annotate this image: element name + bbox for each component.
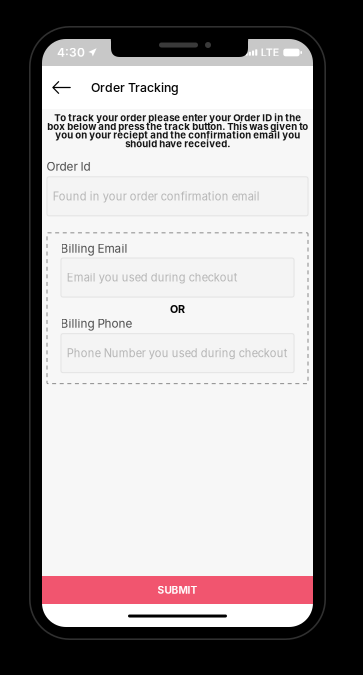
staticText: Billing Email xyxy=(60,241,127,256)
staticText: SUBMIT xyxy=(157,584,197,596)
staticText: Order Id xyxy=(46,159,90,174)
staticText: Billing Phone xyxy=(60,316,132,331)
staticText: Found in your order confirmation email xyxy=(53,190,260,203)
staticText: 4:30 xyxy=(57,45,85,60)
button[interactable]: SUBMIT xyxy=(42,576,313,604)
staticText: LTE xyxy=(261,46,279,59)
button[interactable]: Back xyxy=(47,70,76,104)
staticText: OR xyxy=(170,303,185,315)
staticText: Email you used during checkout xyxy=(67,271,238,284)
button[interactable]: Phone Number you used during checkout xyxy=(60,333,294,373)
staticText: Phone Number you used during checkout xyxy=(67,346,288,360)
button[interactable]: Email you used during checkout xyxy=(60,258,294,298)
staticText: To track your order please enter your Or… xyxy=(47,112,308,149)
staticText: Order Tracking xyxy=(91,80,179,95)
button[interactable]: Found in your order confirmation email xyxy=(46,176,308,216)
